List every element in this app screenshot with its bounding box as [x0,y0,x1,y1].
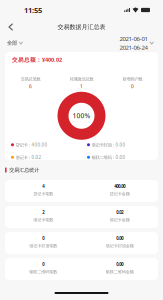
staticText: 100% [72,111,90,120]
staticText: 0 [42,235,44,241]
staticText: 银联二维码笔数 [29,269,57,274]
staticText: 2021-06-24 [119,43,147,51]
staticText: 0.00 [116,235,123,241]
staticText: 贷记卡金额 [110,191,130,196]
staticText: 交易汇总统计 [9,167,39,173]
staticText: 银联二维码：0.00 [92,154,126,160]
staticText: 2 [42,209,44,215]
staticText: 借记卡：0.02 [16,154,42,160]
staticText: 银联二维码金额 [106,269,134,274]
staticText: 6 [29,83,32,90]
staticText: 借记卡封顶笔数 [29,243,57,248]
staticText: 11:55 [24,5,42,15]
staticText: 4 [42,183,44,189]
staticText: 0 [42,261,44,267]
staticText: 交易总额：¥400.02 [12,56,62,63]
staticText: 0 [131,83,134,90]
staticText: 借记卡金额 [110,217,130,222]
staticText: 持属激活总数 [69,76,93,82]
staticText: 借记卡封顶：0.00 [92,142,126,148]
staticText: 贷记卡笔数 [33,191,53,196]
staticText: 交易总笔数 [20,76,40,82]
staticText: 贷记卡：400.00 [16,142,48,148]
staticText: 借记卡笔数 [33,217,53,222]
staticText: 0.00 [116,261,123,267]
staticText: 0.02 [116,209,123,215]
staticText: 新增商户数 [122,76,142,82]
staticText: 交易数据月汇总表 [57,23,105,31]
staticText: 1 [80,83,83,90]
staticText: 400.00 [114,183,125,189]
staticText: 借记卡封顶金额 [106,243,134,248]
staticText: 2021-06-01 [119,34,147,43]
button[interactable]: Back [3,20,19,34]
button[interactable]: 全部 [7,38,23,48]
staticText: 全部 [7,40,17,46]
button[interactable]: 2021-06-01 [119,34,154,51]
